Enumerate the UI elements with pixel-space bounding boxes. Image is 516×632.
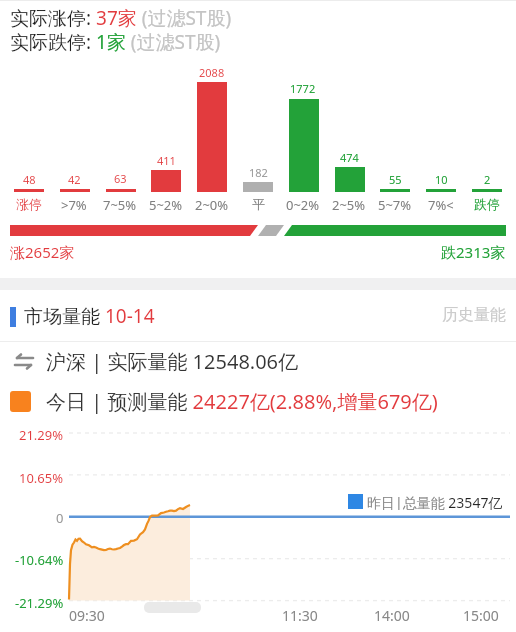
staticText: 历史量能 [442,305,506,325]
staticText: 15:00 [463,606,499,625]
staticText: 今日 | 预测量能 24227亿(2.88%,增量679亿) [46,388,438,415]
staticText: 48 [23,172,36,187]
staticText: 55 [389,172,402,187]
staticText: 14:00 [374,606,410,625]
staticText: 跌2313家 [441,242,506,262]
staticText: 182 [249,165,268,180]
button[interactable]: 沪深 | 实际量能 12548.06亿 [10,346,510,376]
staticText: 涨停 [16,196,42,212]
staticText: 10.65% [19,469,64,487]
staticText: 2 [484,172,491,187]
staticText: 474 [340,150,359,165]
staticText: 沪深 | 实际量能 12548.06亿 [46,348,299,375]
button[interactable]: 今日 | 预测量能 24227亿(2.88%,增量679亿) [10,387,510,415]
staticText: 平 [252,196,265,212]
staticText: 昨日|总量能 23547亿 [367,493,503,510]
staticText: 63 [114,171,127,186]
staticText: 市场量能 10-14 [24,303,155,329]
staticText: 7%< [428,196,454,214]
staticText: 411 [157,153,176,168]
staticText: 0~2% [286,196,320,214]
staticText: 跌停 [474,196,500,212]
staticText: 21.29% [19,426,64,444]
staticText: 涨2652家 [10,242,75,262]
staticText: 09:30 [69,606,105,625]
staticText: 实际涨停: 37家 (过滤ST股) [10,5,232,31]
staticText: 2088 [199,65,225,80]
staticText: 10 [435,172,448,187]
staticText: 2~5% [332,196,366,214]
staticText: 实际跌停: 1家 (过滤ST股) [10,29,221,55]
staticText: 7~5% [103,196,137,214]
staticText: 5~2% [149,196,183,214]
staticText: 2~0% [195,196,229,214]
button[interactable]: 历史量能 [406,300,506,330]
staticText: 42 [68,172,81,187]
staticText: 11:30 [282,606,318,625]
staticText: 5~7% [378,196,412,214]
staticText: 1772 [290,81,316,96]
staticText: -21.29% [15,594,64,612]
button[interactable]: 昨日|总量能 23547亿 [348,493,503,510]
staticText: 0 [56,509,64,527]
staticText: -10.64% [15,551,64,569]
staticText: >7% [61,196,87,214]
